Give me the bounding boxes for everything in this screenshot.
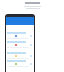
button[interactable] <box>6 41 34 50</box>
button[interactable] <box>6 60 34 69</box>
button[interactable] <box>6 32 34 41</box>
button[interactable] <box>6 52 34 61</box>
